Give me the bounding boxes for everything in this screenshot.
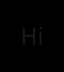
staticText: Hi bbox=[20, 21, 43, 51]
